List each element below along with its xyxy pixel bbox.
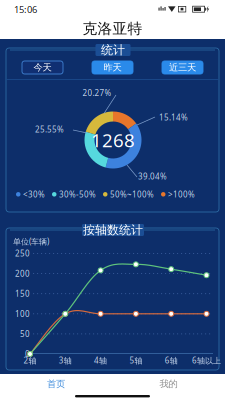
staticText: <30% — [23, 189, 45, 200]
staticText: 2轴 — [23, 355, 36, 366]
staticText: 50%~100% — [110, 189, 154, 200]
staticText: 15.14% — [159, 112, 188, 123]
staticText: 单位(车辆) — [13, 236, 49, 247]
staticText: 6轴 — [165, 355, 178, 366]
staticText: 3轴 — [59, 355, 72, 366]
staticText: 39.04% — [138, 171, 167, 182]
staticText: 30%-50% — [59, 189, 96, 200]
staticText: 我的 — [159, 378, 177, 390]
staticText: 统计 — [101, 43, 125, 57]
button[interactable]: 首页 — [0, 376, 112, 392]
staticText: 200 — [15, 268, 30, 279]
staticText: 50 — [20, 329, 30, 339]
staticText: 250 — [15, 248, 30, 259]
button[interactable]: 昨天 — [92, 61, 133, 74]
staticText: >100% — [168, 189, 195, 200]
staticText: 克洛亚特 — [82, 19, 142, 37]
button[interactable]: 我的 — [112, 376, 225, 392]
button[interactable]: 近三天 — [162, 61, 203, 74]
button[interactable]: 今天 — [22, 61, 63, 74]
staticText: 昨天 — [103, 62, 121, 73]
staticText: 近三天 — [169, 62, 196, 73]
staticText: 1268 — [91, 128, 135, 152]
staticText: 5轴 — [129, 355, 142, 366]
staticText: 按轴数统计 — [83, 223, 143, 237]
staticText: 4轴 — [94, 355, 107, 366]
staticText: 0 — [25, 349, 30, 359]
staticText: 100 — [15, 308, 30, 319]
staticText: 今天 — [33, 62, 51, 73]
staticText: 25.55% — [35, 124, 64, 135]
staticText: 6轴以上 — [192, 355, 221, 366]
staticText: 150 — [15, 288, 30, 299]
staticText: 20.27% — [82, 88, 111, 98]
staticText: 首页 — [47, 378, 65, 390]
staticText: 15:06 — [14, 3, 37, 16]
